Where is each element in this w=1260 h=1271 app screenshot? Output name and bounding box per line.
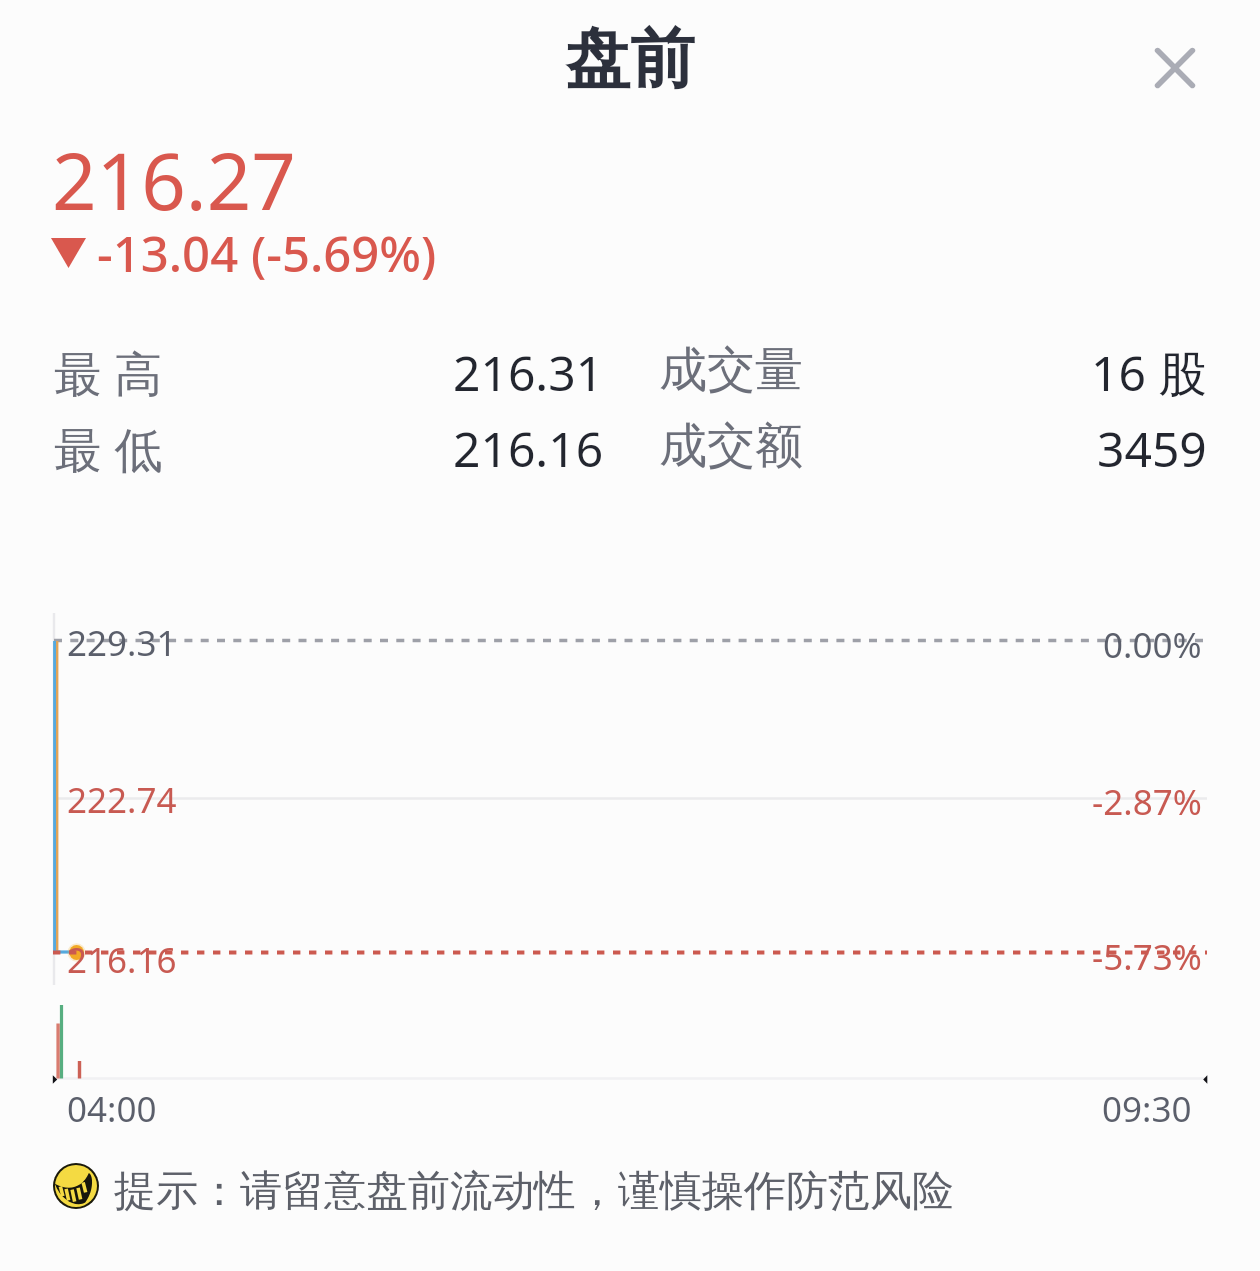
button[interactable]: 最 高: [0, 340, 1260, 402]
staticText: 04:00: [67, 1085, 157, 1133]
staticText: 3459: [1097, 416, 1207, 478]
staticText: 09:30: [1102, 1085, 1192, 1133]
staticText: 提示：请留意盘前流动性，谨慎操作防范风险: [114, 1165, 954, 1218]
button[interactable]: Pre-market price chart: [40, 600, 1220, 1100]
staticText: 216.16: [67, 936, 177, 984]
staticText: -2.87%: [1092, 778, 1202, 826]
staticText: -13.04 (-5.69%): [97, 220, 437, 287]
staticText: 216.27: [52, 127, 296, 233]
staticText: -5.73%: [1092, 933, 1202, 981]
button[interactable]: 最 低: [0, 416, 1260, 478]
staticText: 成交额: [659, 416, 803, 476]
staticText: 216.16: [453, 416, 604, 478]
staticText: 盘前: [565, 18, 695, 100]
staticText: 16 股: [1091, 340, 1207, 402]
staticText: 最 低: [54, 416, 163, 478]
staticText: 222.74: [67, 776, 177, 824]
staticText: 229.31: [67, 619, 177, 667]
button[interactable]: 提示：请留意盘前流动性，谨慎操作防范风险: [53, 1163, 954, 1216]
staticText: 最 高: [54, 340, 163, 402]
staticText: 0.00%: [1103, 621, 1202, 669]
staticText: 216.31: [453, 340, 604, 402]
staticText: 成交量: [659, 340, 803, 400]
button[interactable]: Close: [1131, 24, 1219, 112]
